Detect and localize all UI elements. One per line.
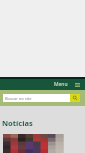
staticText: Notícias <box>2 118 33 128</box>
button[interactable]: Buscar no site <box>3 94 70 102</box>
button[interactable]: Menu <box>50 81 85 88</box>
button[interactable]: Buscar <box>70 94 80 102</box>
staticText: Buscar no site <box>5 96 32 101</box>
staticText: Menu <box>54 81 68 88</box>
button[interactable] <box>3 134 63 153</box>
